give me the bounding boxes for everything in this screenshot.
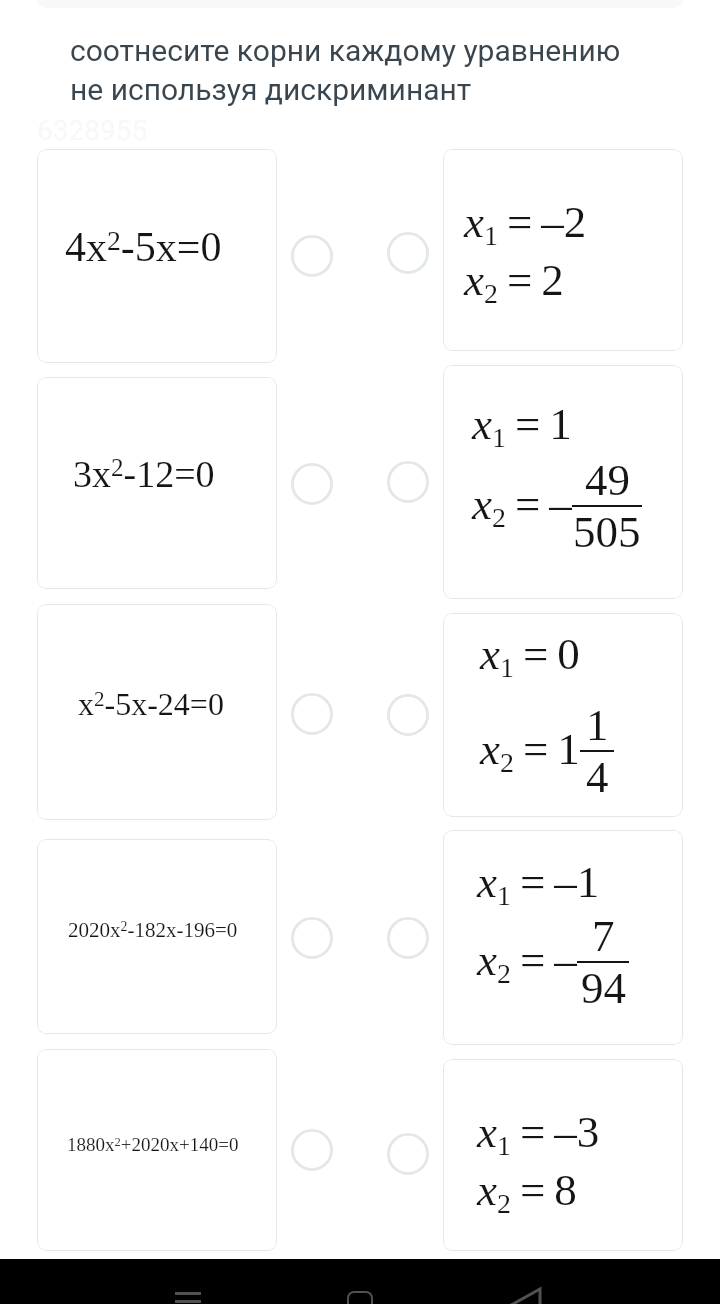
staticText: 1 — [586, 700, 609, 750]
staticText: x2 = 2 — [464, 255, 564, 309]
button[interactable]: Recent apps — [162, 1291, 214, 1304]
staticText: 1880x2+2020x+140=0 — [67, 1134, 239, 1155]
button[interactable]: x1 = 0 — [443, 613, 683, 817]
staticText: 2020x2-182x-196=0 — [68, 918, 238, 941]
button[interactable]: x2-5x-24=0 — [37, 604, 277, 820]
button[interactable]: x1 = –1 — [443, 830, 683, 1045]
staticText: 4 — [586, 752, 609, 802]
staticText: x1 = –2 — [464, 197, 587, 251]
button[interactable]: 4x2-5x=0 — [37, 149, 277, 363]
button[interactable]: 1880x2+2020x+140=0 — [37, 1049, 277, 1251]
staticText: x2 = – — [472, 479, 572, 533]
staticText: 505 — [573, 507, 641, 557]
button[interactable]: Match option — [288, 1126, 336, 1174]
staticText: x1 = 0 — [480, 629, 580, 683]
staticText: x1 = 1 — [472, 399, 572, 453]
button[interactable]: Match option — [384, 458, 432, 506]
staticText: 94 — [581, 963, 626, 1013]
staticText: x2-5x-24=0 — [78, 686, 224, 721]
staticText: x2 = – — [477, 935, 577, 989]
staticText: x1 = –3 — [477, 1107, 600, 1161]
button[interactable]: Match option — [288, 460, 336, 508]
staticText: 49 — [585, 455, 630, 505]
staticText: 7 — [592, 911, 615, 961]
button[interactable]: x1 = –3 — [443, 1059, 683, 1251]
staticText: x2 = 8 — [477, 1165, 577, 1219]
staticText: 6328955 — [37, 114, 148, 147]
staticText: 3x2-12=0 — [73, 453, 215, 495]
button[interactable]: Match option — [384, 229, 432, 277]
button[interactable]: Match option — [384, 691, 432, 739]
button[interactable]: Match option — [288, 232, 336, 280]
button[interactable]: Match option — [288, 690, 336, 738]
button[interactable]: x1 = 1 — [443, 365, 683, 599]
button[interactable]: Match option — [288, 914, 336, 962]
staticText: x1 = –1 — [477, 857, 600, 911]
button[interactable]: Match option — [384, 1130, 432, 1178]
button[interactable]: x1 = –2 — [443, 149, 683, 351]
staticText: соотнесите корни каждому уравнению не ис… — [70, 33, 621, 107]
button[interactable]: Match option — [384, 914, 432, 962]
button[interactable]: Back — [498, 1289, 554, 1304]
button[interactable]: 2020x2-182x-196=0 — [37, 839, 277, 1034]
staticText: x2 = 1 — [480, 724, 580, 778]
button[interactable]: 3x2-12=0 — [37, 377, 277, 589]
staticText: 4x2-5x=0 — [65, 224, 222, 271]
button[interactable]: Home — [347, 1291, 373, 1304]
